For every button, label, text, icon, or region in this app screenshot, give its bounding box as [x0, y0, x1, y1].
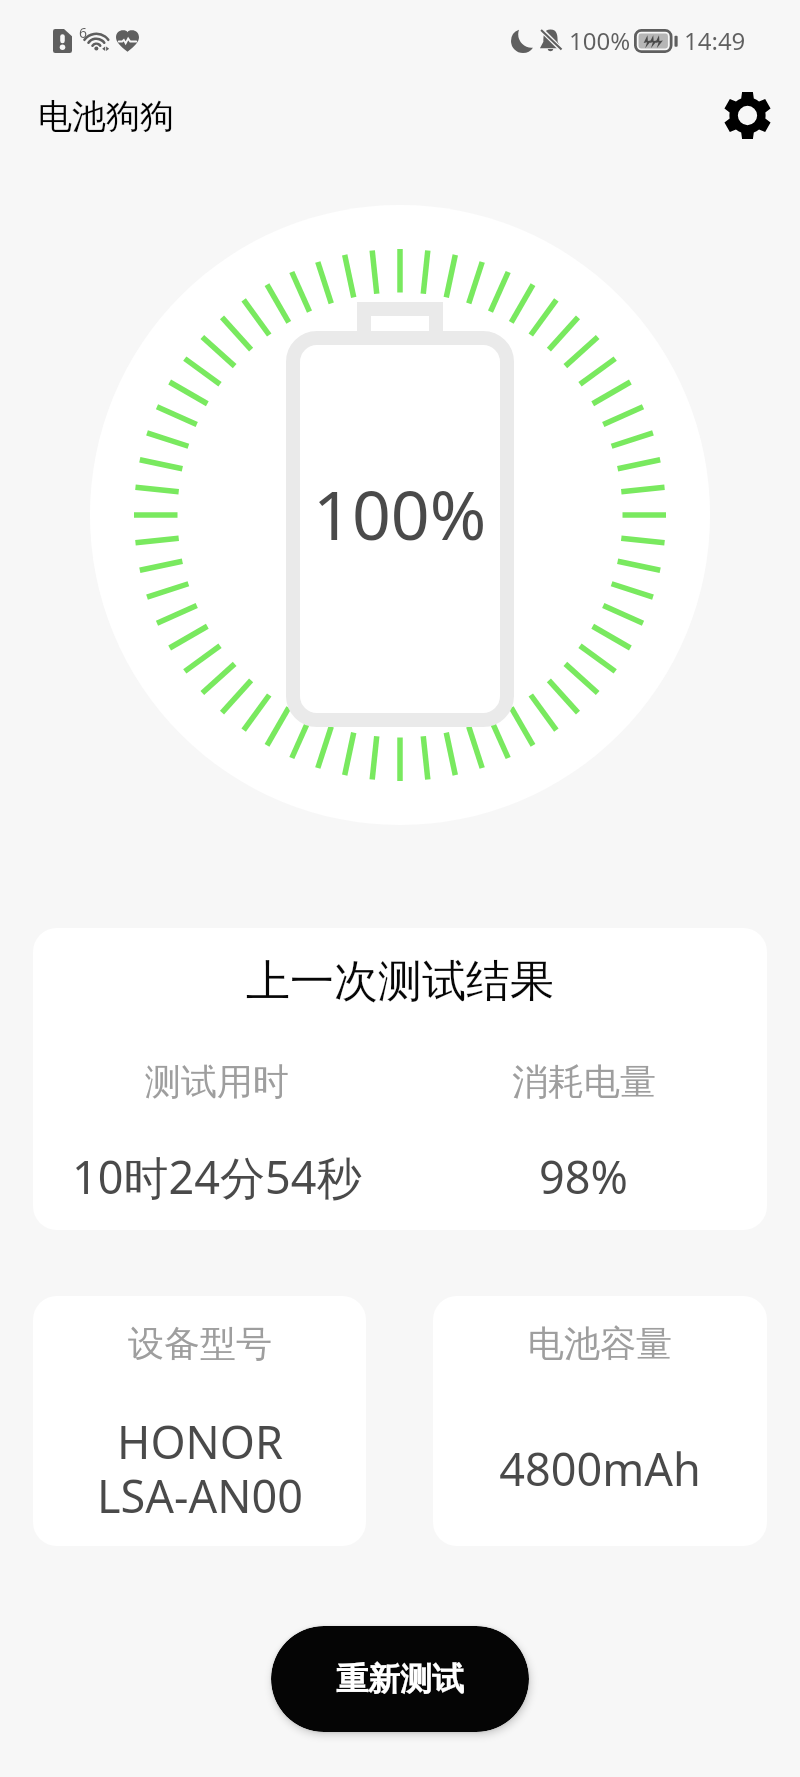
staticText: 4800mAh	[499, 1438, 701, 1499]
staticText: 设备型号	[128, 1321, 272, 1366]
staticText: 上一次测试结果	[33, 954, 767, 1009]
staticText: 100%	[569, 24, 631, 57]
staticText: 电池狗狗	[38, 95, 174, 138]
staticText: 6	[79, 23, 88, 42]
staticText: 消耗电量	[512, 1059, 656, 1104]
button[interactable]: Settings	[718, 86, 776, 144]
staticText: 电池容量	[528, 1321, 672, 1366]
staticText: HONOR LSA-AN00	[97, 1411, 303, 1526]
staticText: 重新测试	[336, 1659, 464, 1699]
button[interactable]: 重新测试	[271, 1626, 529, 1732]
button[interactable]: 设备型号	[33, 1296, 366, 1546]
staticText: 100%	[313, 467, 487, 560]
staticText: 测试用时	[145, 1059, 289, 1104]
staticText: 10时24分54秒	[72, 1146, 362, 1207]
button[interactable]: 上一次测试结果	[33, 928, 767, 1230]
staticText: 14:49	[684, 24, 746, 57]
button[interactable]: 电池容量	[433, 1296, 767, 1546]
staticText: 98%	[539, 1146, 628, 1207]
